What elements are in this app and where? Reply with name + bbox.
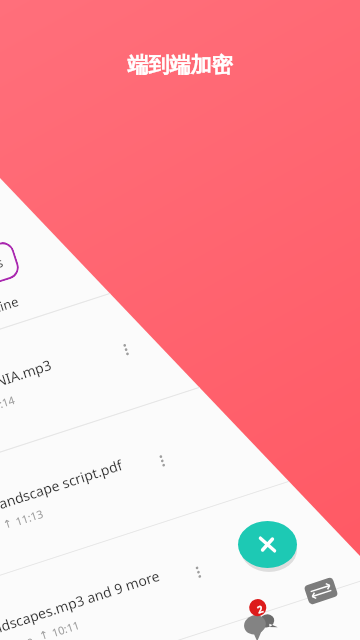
staticText: 端到端加密 <box>0 52 360 78</box>
button[interactable]: Sea and landscape script.pdf <box>0 344 360 627</box>
staticText: Repérage <box>0 632 35 640</box>
button[interactable]: More options <box>182 556 215 589</box>
button[interactable]: New transfer <box>238 521 297 568</box>
staticText: 11:14 <box>0 392 17 415</box>
staticText: TALLINN ESTONIA.mp3 <box>0 355 54 420</box>
staticText: 2 <box>255 601 265 617</box>
staticText: Offline <box>0 292 21 322</box>
button[interactable]: TALLINN ESTONIA.mp3 <box>0 232 335 516</box>
staticText: 11:13 <box>13 505 46 529</box>
button[interactable]: Landscapes.mp3 and 9 more <box>0 455 360 640</box>
staticText: ↑ <box>38 628 51 640</box>
staticText: 10:11 <box>50 617 82 640</box>
staticText: Sea and landscape script.pdf <box>0 455 125 531</box>
staticText: Landscapes.mp3 and 9 more <box>0 566 162 640</box>
button[interactable]: More options <box>146 444 179 477</box>
staticText: ↑ <box>1 516 15 532</box>
staticText: Videos <box>0 253 6 283</box>
button[interactable]: Videos <box>0 239 22 296</box>
button[interactable]: Vacation notes.txt <box>0 566 360 640</box>
button[interactable]: Transfer <box>303 573 339 609</box>
button[interactable]: More options <box>110 333 142 366</box>
button[interactable]: Chats, 2 unread <box>236 596 280 640</box>
